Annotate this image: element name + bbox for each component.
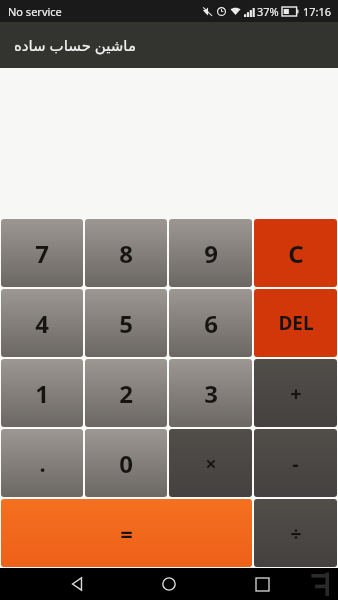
staticText: 5: [119, 307, 133, 340]
button[interactable]: Recent apps: [246, 568, 278, 600]
staticText: 7: [35, 237, 49, 270]
staticText: .: [39, 448, 46, 478]
staticText: 37%: [257, 4, 279, 19]
button[interactable]: 3: [169, 359, 252, 427]
staticText: 4: [35, 307, 49, 340]
button[interactable]: 4: [1, 289, 83, 357]
staticText: ×: [205, 450, 217, 477]
button[interactable]: ÷: [254, 499, 337, 567]
button[interactable]: -: [254, 429, 337, 497]
button[interactable]: 0: [85, 429, 167, 497]
button[interactable]: 7: [1, 219, 83, 287]
staticText: =: [120, 518, 133, 548]
button[interactable]: +: [254, 359, 337, 427]
staticText: -: [292, 450, 299, 477]
button[interactable]: 9: [169, 219, 252, 287]
staticText: 1: [35, 377, 49, 410]
staticText: 17:16: [303, 4, 332, 19]
staticText: ماشین حساب ساده: [14, 35, 136, 55]
button[interactable]: Back: [61, 568, 93, 600]
staticText: 8: [119, 237, 133, 270]
button[interactable]: C: [254, 219, 337, 287]
staticText: 0: [119, 447, 133, 480]
button[interactable]: 1: [1, 359, 83, 427]
button[interactable]: DEL: [254, 289, 337, 357]
button[interactable]: 2: [85, 359, 167, 427]
staticText: 6: [204, 307, 218, 340]
button[interactable]: Home: [153, 568, 185, 600]
staticText: DEL: [278, 310, 314, 336]
staticText: 3: [204, 377, 218, 410]
staticText: No service: [8, 4, 62, 19]
button[interactable]: 8: [85, 219, 167, 287]
staticText: C: [288, 237, 304, 270]
staticText: 9: [204, 237, 218, 270]
button[interactable]: .: [1, 429, 83, 497]
button[interactable]: 5: [85, 289, 167, 357]
button[interactable]: =: [1, 499, 252, 567]
staticText: ÷: [290, 520, 302, 547]
button[interactable]: 6: [169, 289, 252, 357]
button[interactable]: ×: [169, 429, 252, 497]
staticText: 2: [119, 377, 133, 410]
staticText: +: [290, 380, 302, 407]
